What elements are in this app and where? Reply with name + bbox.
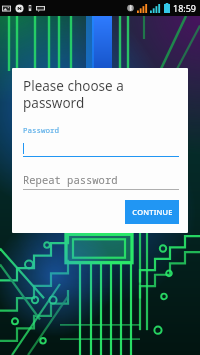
staticText: CONTINUE	[132, 207, 173, 217]
staticText: Repeat password	[23, 173, 118, 187]
staticText: 18:59	[173, 2, 197, 14]
staticText: Password	[23, 125, 59, 135]
staticText: Please choose a password	[23, 77, 124, 112]
button[interactable]: Password field	[23, 142, 179, 157]
button[interactable]: CONTINUE	[125, 200, 179, 224]
button[interactable]: Repeat password field	[23, 173, 179, 190]
